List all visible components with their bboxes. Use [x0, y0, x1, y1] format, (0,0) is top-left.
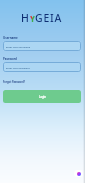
staticText: Username [3, 36, 18, 40]
button[interactable]: Forgot Password? [3, 80, 26, 83]
staticText: Enter your password [6, 66, 30, 69]
staticText: Enter your username [6, 45, 31, 48]
button[interactable]: Enter your username [3, 41, 81, 51]
button[interactable]: App badge [74, 170, 83, 177]
staticText: H [21, 11, 30, 25]
staticText: Password [3, 57, 17, 61]
button[interactable]: Enter your password [3, 62, 81, 72]
staticText: Login [39, 95, 46, 98]
staticText: GEIA [35, 11, 63, 25]
button[interactable]: Login [3, 90, 81, 103]
